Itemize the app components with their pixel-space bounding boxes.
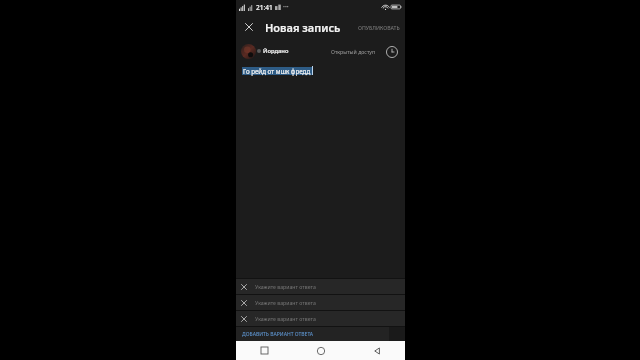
staticText: Укажите вариант ответа [255,299,316,306]
staticText: ••• [283,4,289,11]
button[interactable]: Remove option [236,295,405,310]
staticText: Укажите вариант ответа [255,283,316,290]
button[interactable]: Back [349,341,405,360]
button[interactable]: ДОБАВИТЬ ВАРИАНТ ОТВЕТА [236,327,405,341]
staticText: Укажите вариант ответа [255,315,316,322]
button[interactable]: Remove option [236,279,405,294]
button[interactable]: Recent apps [236,341,293,360]
button[interactable]: Profile photo [241,44,256,59]
button[interactable]: Remove option [236,311,405,326]
staticText: Го рейд от мшк фредд [243,67,311,75]
staticText: 21:41 [256,3,273,12]
button[interactable]: Открытый доступ [329,45,378,58]
button[interactable]: Remove option [236,311,251,326]
button[interactable]: ОПУБЛИКОВАТЬ [353,14,405,40]
button[interactable]: Home [293,341,349,360]
button[interactable]: Schedule post [383,43,400,60]
staticText: Открытый доступ [331,48,376,55]
button[interactable]: Close [236,14,262,40]
button[interactable]: Remove option [236,295,251,310]
button[interactable]: Го рейд от мшк фредд [236,62,405,278]
staticText: Йордано [263,47,289,55]
staticText: ДОБАВИТЬ ВАРИАНТ ОТВЕТА [242,331,314,338]
button[interactable]: Remove option [236,279,251,294]
staticText: Новая запись [265,20,341,35]
staticText: ОПУБЛИКОВАТЬ [358,24,400,31]
